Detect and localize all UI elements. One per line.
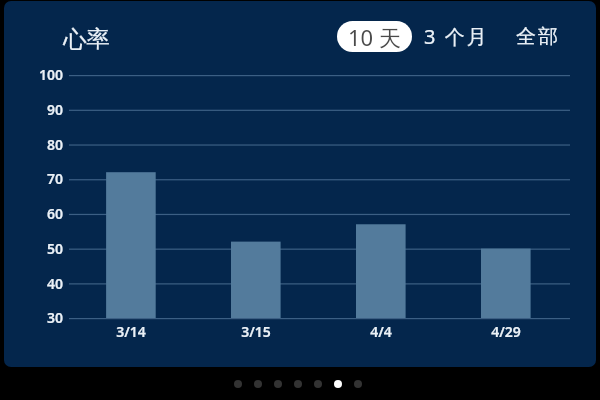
button[interactable]: 10 天: [337, 21, 412, 52]
staticText: 40: [18, 274, 63, 293]
button[interactable]: Page 7: [354, 380, 362, 388]
staticText: 90: [18, 100, 63, 119]
staticText: 50: [18, 239, 63, 258]
button[interactable]: 全部: [507, 21, 567, 52]
staticText: 100: [18, 65, 63, 84]
button[interactable]: Page 5: [314, 380, 322, 388]
staticText: 70: [18, 169, 63, 188]
staticText: 60: [18, 204, 63, 223]
staticText: 4/4: [346, 322, 416, 341]
staticText: 10 天: [348, 22, 401, 52]
button[interactable]: Page 3: [274, 380, 282, 388]
staticText: 3 个月: [424, 23, 489, 50]
button[interactable]: Page 2: [254, 380, 262, 388]
staticText: 全部: [515, 24, 559, 49]
button[interactable]: Page 1: [234, 380, 242, 388]
button[interactable]: 3 个月: [420, 21, 493, 52]
staticText: 心率: [63, 24, 110, 54]
staticText: 80: [18, 135, 63, 154]
button[interactable]: Page 4: [294, 380, 302, 388]
staticText: 3/14: [96, 322, 166, 341]
staticText: 30: [18, 308, 63, 327]
staticText: 3/15: [221, 322, 291, 341]
button[interactable]: Page 6: [334, 380, 342, 388]
staticText: 4/29: [471, 322, 541, 341]
